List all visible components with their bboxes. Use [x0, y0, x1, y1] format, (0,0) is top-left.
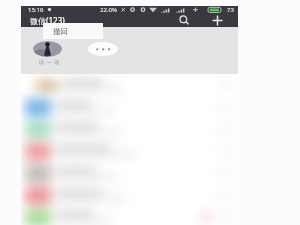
button[interactable]: More options — [88, 42, 118, 56]
staticText: 微信(123) — [30, 15, 65, 26]
button[interactable]: Add — [207, 14, 227, 26]
staticText: 22.0% — [100, 6, 117, 13]
button[interactable] — [21, 118, 238, 140]
button[interactable]: Contact avatar — [33, 41, 62, 57]
button[interactable] — [21, 206, 238, 225]
button[interactable] — [21, 96, 238, 118]
button[interactable] — [21, 74, 238, 96]
button[interactable]: 撤回 — [43, 23, 103, 39]
button[interactable]: Search — [174, 14, 194, 26]
staticText: 话 — 话 — [39, 59, 60, 66]
button[interactable] — [21, 140, 238, 162]
button[interactable] — [21, 184, 238, 206]
staticText: 15:16 — [28, 6, 44, 13]
button[interactable] — [21, 162, 238, 184]
staticText: 73 — [227, 6, 234, 13]
staticText: 撤回 — [53, 27, 68, 36]
